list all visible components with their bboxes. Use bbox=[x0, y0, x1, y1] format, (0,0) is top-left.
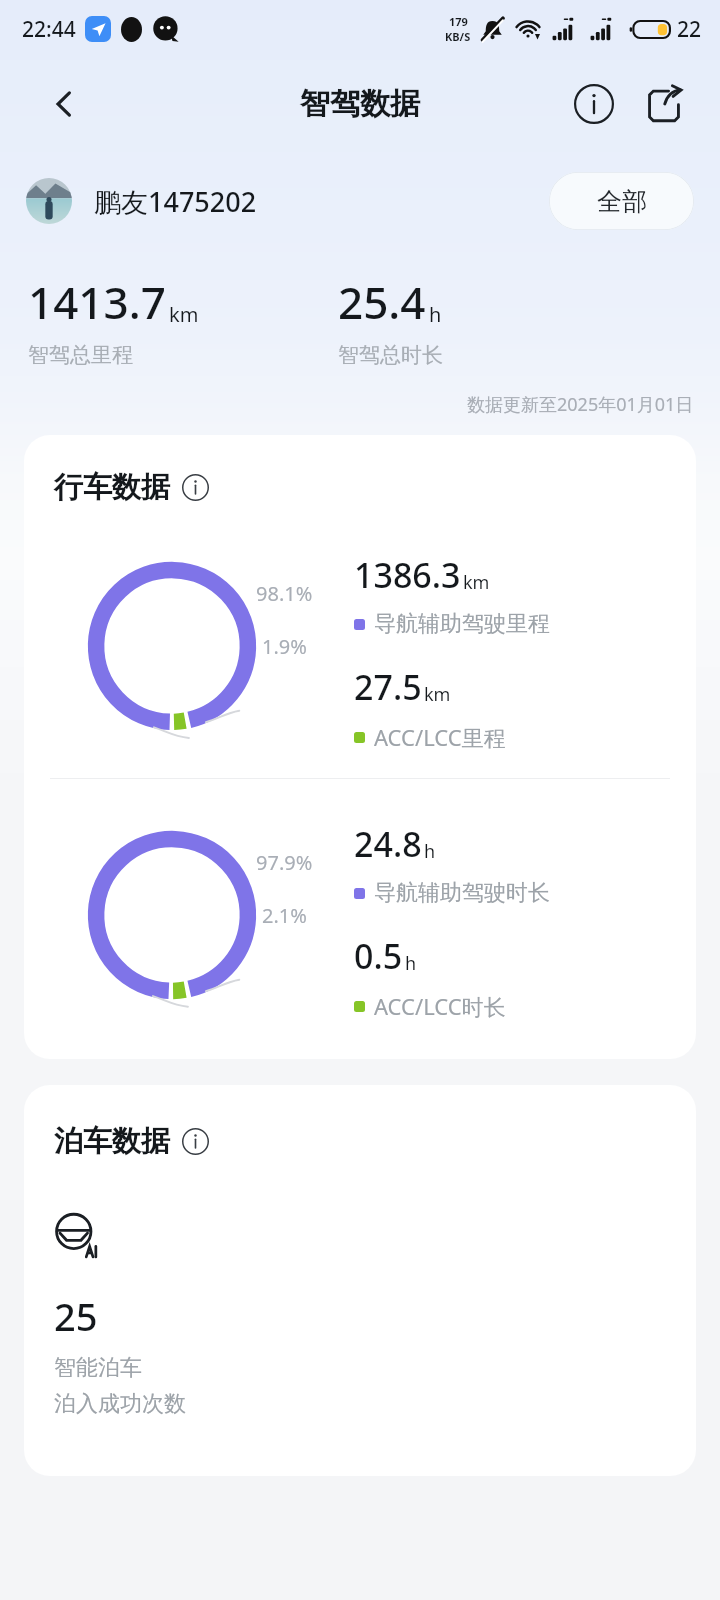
staticText: 数据更新至2025年01月01日 bbox=[467, 392, 694, 417]
staticText: km bbox=[424, 682, 451, 707]
staticText: 智驾数据 bbox=[300, 85, 420, 123]
staticText: 98.1% bbox=[256, 580, 313, 607]
staticText: 22:44 bbox=[22, 15, 76, 44]
staticText: 0.5 bbox=[354, 933, 403, 979]
staticText: ACC/LCC时长 bbox=[374, 991, 506, 1021]
button[interactable]: Share bbox=[636, 76, 692, 132]
staticText: 导航辅助驾驶时长 bbox=[374, 879, 550, 907]
staticText: 泊入成功次数 bbox=[54, 1390, 186, 1418]
staticText: h bbox=[424, 839, 436, 864]
staticText: 泊车数据 bbox=[54, 1123, 170, 1160]
button[interactable]: Back bbox=[38, 78, 90, 130]
staticText: 1386.3 bbox=[354, 552, 461, 598]
staticText: 鹏友1475202 bbox=[94, 183, 257, 220]
staticText: 22 bbox=[677, 15, 702, 44]
staticText: 179 bbox=[449, 14, 468, 29]
staticText: km bbox=[463, 570, 490, 595]
staticText: ACC/LCC里程 bbox=[374, 722, 506, 752]
button[interactable]: 全部 bbox=[549, 172, 694, 230]
staticText: 27.5 bbox=[354, 664, 422, 710]
staticText: 1413.7 bbox=[28, 272, 166, 332]
staticText: h bbox=[405, 951, 417, 976]
staticText: 智能泊车 bbox=[54, 1354, 142, 1382]
staticText: 1.9% bbox=[262, 633, 307, 660]
staticText: 导航辅助驾驶里程 bbox=[374, 610, 550, 638]
staticText: km bbox=[169, 301, 199, 328]
staticText: 25.4 bbox=[338, 272, 426, 332]
staticText: 25 bbox=[54, 1290, 98, 1342]
staticText: 24.8 bbox=[354, 821, 422, 867]
staticText: 全部 bbox=[597, 186, 647, 217]
button[interactable]: Info bbox=[566, 76, 622, 132]
staticText: 97.9% bbox=[256, 849, 313, 876]
button[interactable]: 泊车数据 bbox=[24, 1085, 696, 1476]
staticText: 智驾总里程 bbox=[28, 342, 133, 368]
staticText: h bbox=[429, 301, 442, 328]
staticText: 智驾总时长 bbox=[338, 342, 443, 368]
staticText: KB/S bbox=[445, 29, 471, 44]
staticText: 行车数据 bbox=[54, 469, 170, 506]
button[interactable]: 行车数据 bbox=[24, 435, 696, 1059]
staticText: 2.1% bbox=[262, 902, 307, 929]
